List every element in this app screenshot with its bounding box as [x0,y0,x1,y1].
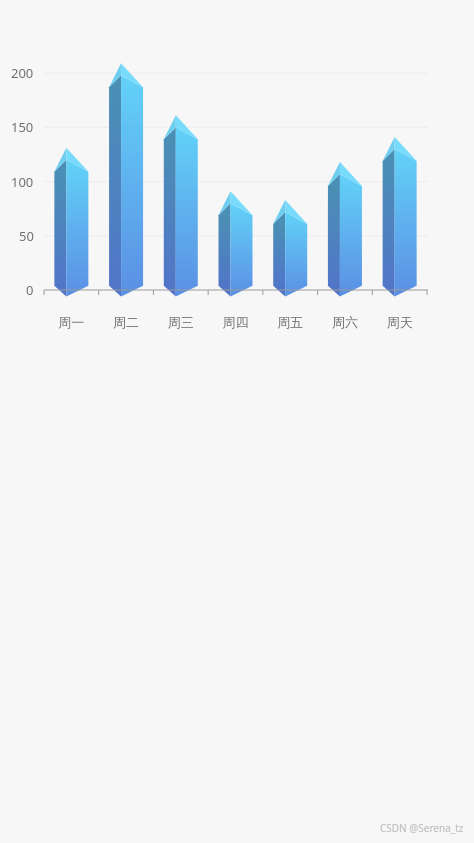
button[interactable]: Weekly 3D bar chart [0,0,474,843]
